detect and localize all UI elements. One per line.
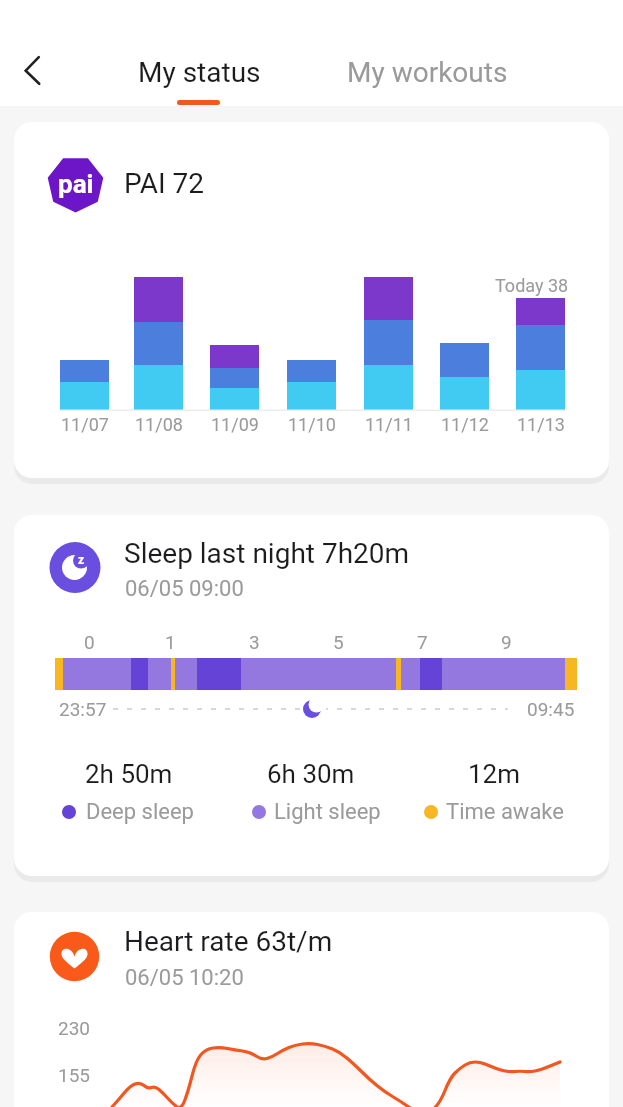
- staticText: Heart rate 63t/m: [124, 925, 333, 958]
- button[interactable]: [10, 50, 58, 96]
- button[interactable]: [14, 122, 609, 478]
- staticText: 11/07: [61, 414, 109, 435]
- button[interactable]: [124, 44, 274, 106]
- staticText: 11/12: [441, 414, 489, 435]
- staticText: 06/05 09:00: [125, 576, 244, 602]
- staticText: 09:45: [527, 698, 575, 720]
- staticText: Sleep last night 7h20m: [124, 537, 410, 570]
- staticText: Light sleep: [274, 799, 381, 825]
- staticText: 3: [249, 631, 260, 653]
- staticText: 2h 50m: [85, 759, 173, 789]
- staticText: 9: [501, 631, 512, 653]
- staticText: PAI 72: [124, 167, 205, 200]
- staticText: 1: [165, 631, 176, 653]
- button[interactable]: [14, 515, 609, 876]
- staticText: 11/11: [365, 414, 413, 435]
- button[interactable]: [336, 44, 516, 106]
- button[interactable]: [14, 912, 609, 1107]
- staticText: 23:57: [59, 698, 107, 720]
- staticText: 5: [333, 631, 344, 653]
- staticText: z: [78, 553, 85, 567]
- staticText: pai: [58, 169, 94, 199]
- staticText: 7: [417, 631, 428, 653]
- staticText: 11/09: [211, 414, 259, 435]
- staticText: Today 38: [495, 275, 569, 296]
- staticText: 0: [84, 631, 95, 653]
- staticText: 6h 30m: [267, 759, 355, 789]
- staticText: 230: [58, 1017, 91, 1039]
- staticText: 11/08: [135, 414, 183, 435]
- staticText: 11/13: [517, 414, 565, 435]
- staticText: 155: [58, 1064, 91, 1086]
- staticText: 11/10: [288, 414, 336, 435]
- staticText: 12m: [468, 759, 521, 789]
- staticText: My workouts: [347, 56, 508, 89]
- staticText: 06/05 10:20: [125, 965, 244, 991]
- staticText: Time awake: [446, 799, 564, 825]
- staticText: My status: [138, 56, 261, 89]
- staticText: Deep sleep: [86, 799, 194, 825]
